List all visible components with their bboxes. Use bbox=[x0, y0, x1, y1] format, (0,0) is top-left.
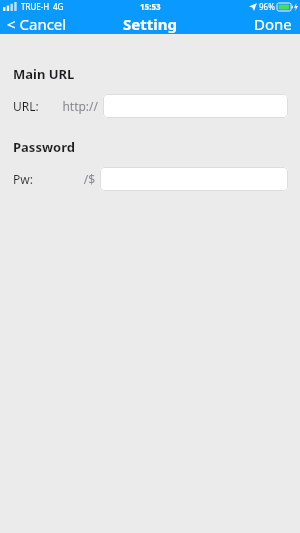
staticText: Password bbox=[13, 138, 75, 156]
staticText: Done bbox=[254, 14, 292, 32]
staticText: Main URL bbox=[13, 65, 75, 83]
staticText: /$ bbox=[83, 171, 95, 187]
staticText: 4G bbox=[53, 1, 64, 12]
staticText: Pw: bbox=[13, 171, 33, 187]
button[interactable] bbox=[100, 167, 288, 191]
button[interactable] bbox=[103, 94, 288, 118]
staticText: < Cancel bbox=[7, 14, 67, 32]
staticText: http:// bbox=[62, 98, 98, 114]
button[interactable]: Done bbox=[246, 13, 300, 34]
staticText: TRUE-H bbox=[21, 1, 50, 12]
staticText: 15:53 bbox=[140, 1, 161, 12]
staticText: 96% bbox=[259, 1, 275, 12]
staticText: URL: bbox=[13, 98, 39, 114]
button[interactable]: < Cancel bbox=[0, 13, 75, 34]
staticText: Setting bbox=[123, 14, 177, 34]
